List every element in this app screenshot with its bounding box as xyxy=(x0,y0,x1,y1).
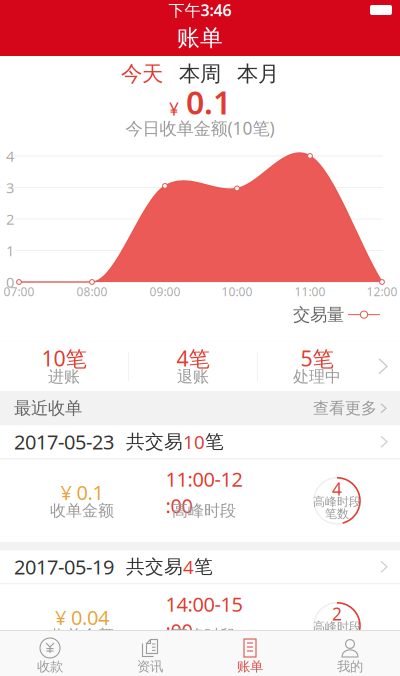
staticText: 4笔 xyxy=(176,344,209,372)
staticText: 3 xyxy=(6,178,14,197)
staticText: 收单金额 xyxy=(50,501,114,521)
button[interactable]: 收款 xyxy=(0,631,100,676)
staticText: 4 xyxy=(6,146,14,166)
button[interactable]: 本月 xyxy=(237,61,279,87)
staticText: 收单金额 xyxy=(50,626,114,646)
staticText: ¥ 0.1 xyxy=(60,479,103,506)
staticText: 14:00-15:00 xyxy=(165,591,242,644)
staticText: 今天 xyxy=(121,61,163,87)
button[interactable]: 资讯 xyxy=(100,631,200,676)
staticText: ¥ xyxy=(169,97,179,120)
staticText: 下午3:46 xyxy=(168,0,231,21)
staticText: 1 xyxy=(6,241,14,260)
staticText: 08:00 xyxy=(76,283,107,299)
staticText: 2 xyxy=(6,209,14,229)
staticText: 2017-05-19 xyxy=(14,553,114,580)
staticText: 10笔 xyxy=(41,344,86,372)
staticText: 0.1 xyxy=(186,81,231,123)
button[interactable]: 查看更多 xyxy=(313,398,386,418)
staticText: 笔 xyxy=(205,430,224,453)
button[interactable]: 10笔 xyxy=(0,341,400,391)
staticText: 笔数 xyxy=(325,506,349,521)
staticText: 高峰时段 xyxy=(172,626,236,646)
staticText: 查看更多 xyxy=(313,398,377,418)
staticText: 笔数 xyxy=(325,631,349,646)
staticText: 4 xyxy=(183,554,194,579)
staticText: 进账 xyxy=(48,367,80,387)
staticText: 11:00 xyxy=(294,283,325,299)
staticText: 12:00 xyxy=(366,283,397,299)
staticText: 2 xyxy=(332,602,342,625)
staticText: 10 xyxy=(183,429,205,454)
staticText: 共交易 xyxy=(114,430,183,453)
button[interactable]: 今天 xyxy=(121,61,163,87)
staticText: 高峰时段 xyxy=(313,619,361,634)
staticText: 今日收单金额(10笔) xyxy=(125,116,274,139)
button[interactable]: 我的 xyxy=(300,631,400,676)
staticText: 本周 xyxy=(179,61,221,87)
staticText: ¥ 0.04 xyxy=(55,604,109,631)
staticText: 退账 xyxy=(177,367,209,387)
staticText: 2017-05-23 xyxy=(14,428,114,455)
staticText: 高峰时段 xyxy=(313,494,361,509)
staticText: 07:00 xyxy=(3,283,34,299)
staticText: 0 xyxy=(6,272,14,292)
button[interactable]: 2017-05-19 xyxy=(0,550,400,583)
staticText: 09:00 xyxy=(149,283,180,299)
staticText: 共交易 xyxy=(114,555,183,578)
staticText: 收款 xyxy=(37,658,63,675)
button[interactable]: 账单 xyxy=(200,631,300,676)
staticText: 最近收单 xyxy=(14,398,82,419)
staticText: 高峰时段 xyxy=(172,501,236,521)
staticText: 账单 xyxy=(177,24,223,52)
staticText: 本月 xyxy=(237,61,279,87)
staticText: 10:00 xyxy=(221,283,252,299)
staticText: 交易量 xyxy=(293,304,344,325)
staticText: 资讯 xyxy=(137,658,163,675)
staticText: 5笔 xyxy=(300,344,333,372)
staticText: 11:00-12:00 xyxy=(165,466,242,519)
staticText: 账单 xyxy=(237,658,263,675)
staticText: 笔 xyxy=(194,555,213,578)
button[interactable]: 本周 xyxy=(179,61,221,87)
button[interactable]: 2017-05-23 xyxy=(0,425,400,458)
staticText: 4 xyxy=(332,477,342,500)
staticText: 处理中 xyxy=(293,367,341,387)
staticText: 我的 xyxy=(337,658,363,675)
